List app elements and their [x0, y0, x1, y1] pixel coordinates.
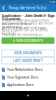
staticText: Need a hand? Call us at (800) 555-0147.	[2, 28, 48, 35]
button[interactable]: Your Signature Docs	[2, 75, 54, 80]
staticText: and follow up with next steps.	[2, 26, 48, 30]
button[interactable]: E-SIGN DOCUMENTS	[2, 37, 54, 44]
staticText: Application Docs	[7, 83, 34, 87]
staticText: Thank you for choosing us.	[2, 33, 44, 36]
staticText: Things We Need To Do	[8, 6, 46, 10]
button[interactable]: Back	[1, 4, 7, 12]
staticText: your loan moving. Once you finish, we wi…	[2, 22, 55, 29]
button[interactable]: LAST SAVED DRAFT	[2, 57, 54, 64]
staticText: Documents	[2, 17, 21, 21]
staticText: Please e-sign your application documents…	[2, 19, 50, 26]
staticText: LAST SAVED DRAFT	[13, 59, 43, 62]
staticText: Your Notarization Docs	[7, 68, 43, 72]
button[interactable]: Your Notarization Docs	[2, 67, 54, 73]
button[interactable]: Application Docs	[2, 82, 54, 88]
staticText: Application - John Smith E-Sign	[2, 13, 55, 18]
staticText: VIEW DOCUMENTS	[14, 51, 42, 55]
staticText: E-SIGN DOCUMENTS	[13, 39, 43, 42]
staticText: Your Signature Docs	[7, 76, 39, 79]
button[interactable]: VIEW DOCUMENTS	[2, 50, 54, 56]
